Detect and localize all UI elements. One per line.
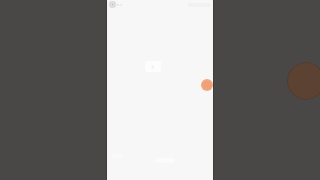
button[interactable]: App icon: [110, 2, 115, 7]
button[interactable]: Accent marker: [201, 79, 213, 91]
